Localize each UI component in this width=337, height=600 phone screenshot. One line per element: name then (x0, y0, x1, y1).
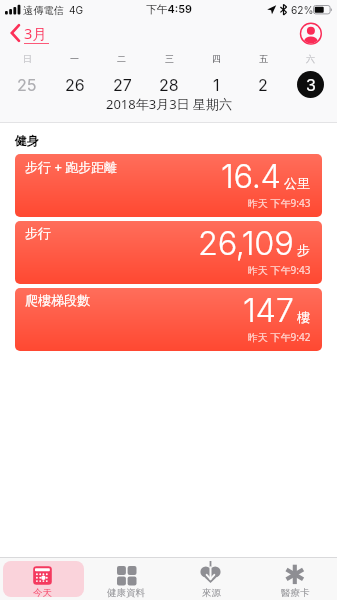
staticText: 昨天 下午9:43 (248, 196, 311, 210)
staticText: 健康資料 (107, 587, 145, 599)
staticText: 27 (113, 75, 132, 94)
staticText: 樓 (297, 309, 310, 325)
staticText: 下午4:59 (146, 3, 192, 17)
button[interactable]: 健康資料 (84, 587, 168, 600)
staticText: 爬樓梯段數 (25, 292, 90, 308)
staticText: 28 (159, 75, 179, 94)
button[interactable] (253, 558, 337, 600)
staticText: 今天 (33, 587, 52, 599)
button[interactable]: 爬樓梯段數 (15, 288, 322, 351)
staticText: 四 (212, 53, 221, 64)
button[interactable] (0, 558, 84, 600)
staticText: 3月 (24, 23, 47, 43)
staticText: 日 (23, 53, 32, 64)
staticText: 昨天 下午9:42 (248, 330, 311, 344)
staticText: 25 (17, 75, 37, 94)
button[interactable]: 3 (297, 71, 324, 98)
staticText: 二 (117, 53, 126, 64)
staticText: 醫療卡 (281, 587, 310, 599)
staticText: 26,109 (198, 224, 294, 263)
button[interactable] (84, 558, 168, 600)
staticText: 3 (306, 75, 316, 94)
button[interactable] (299, 22, 323, 46)
staticText: 62% (291, 4, 314, 16)
button[interactable]: 來源 (169, 587, 253, 600)
staticText: 2018年3月3日 星期六 (106, 95, 232, 113)
button[interactable]: 今天 (0, 587, 84, 600)
staticText: 4G (69, 4, 84, 16)
button[interactable]: 1 (196, 75, 236, 94)
staticText: 1 (213, 75, 220, 94)
button[interactable]: 27 (102, 75, 142, 94)
staticText: 步行 + 跑步距離 (25, 158, 118, 176)
staticText: 步行 (25, 225, 51, 241)
staticText: 147 (243, 291, 294, 330)
staticText: 遠傳電信 (23, 4, 64, 17)
button[interactable]: 步行 + 跑步距離 (15, 154, 322, 217)
staticText: 來源 (202, 587, 221, 599)
staticText: 五 (259, 53, 268, 64)
staticText: 16.4 (221, 157, 281, 196)
button[interactable]: 步行 (15, 221, 322, 284)
button[interactable]: 26 (55, 75, 95, 94)
button[interactable] (169, 558, 253, 600)
button[interactable]: 25 (7, 75, 47, 94)
button[interactable] (3, 561, 84, 597)
button[interactable]: 2 (243, 75, 283, 94)
button[interactable]: 28 (149, 75, 189, 94)
button[interactable]: 醫療卡 (253, 587, 337, 600)
staticText: 昨天 下午9:43 (248, 263, 311, 277)
staticText: 一 (70, 53, 79, 64)
button[interactable]: 3月 (6, 22, 54, 44)
staticText: 三 (165, 53, 174, 64)
staticText: 2 (258, 75, 268, 94)
staticText: 六 (306, 53, 315, 64)
staticText: 26 (65, 75, 85, 94)
staticText: 步 (297, 242, 310, 258)
staticText: 公里 (284, 175, 310, 191)
staticText: 健身 (15, 133, 39, 148)
